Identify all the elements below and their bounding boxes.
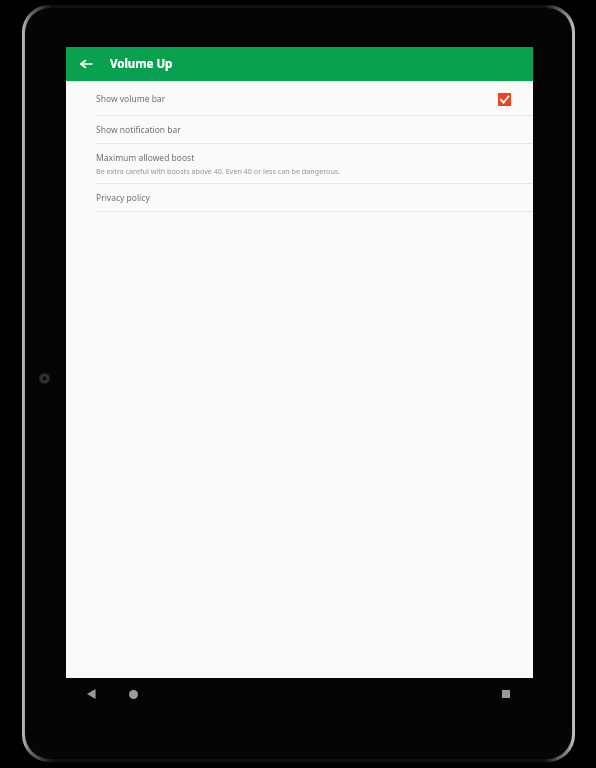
button[interactable]: Navigate up	[73, 51, 99, 77]
button[interactable]: Show volume bar	[66, 82, 533, 115]
staticText: Privacy policy	[96, 192, 150, 204]
button[interactable]: Recent apps	[492, 683, 520, 705]
button[interactable]: Home	[118, 683, 148, 705]
staticText: Be extra careful with boosts above 40. E…	[96, 166, 341, 176]
button[interactable]: Show notification bar	[66, 116, 533, 143]
staticText: Volume Up	[110, 56, 173, 72]
staticText: Show notification bar	[96, 124, 181, 136]
staticText: Maximum allowed boost	[96, 152, 195, 164]
button[interactable]: Show volume bar toggle	[493, 88, 515, 110]
button[interactable]: Maximum allowed boost	[66, 144, 533, 183]
button[interactable]: Back	[76, 683, 106, 705]
button[interactable]: Privacy policy	[66, 184, 533, 211]
staticText: Show volume bar	[96, 93, 166, 105]
